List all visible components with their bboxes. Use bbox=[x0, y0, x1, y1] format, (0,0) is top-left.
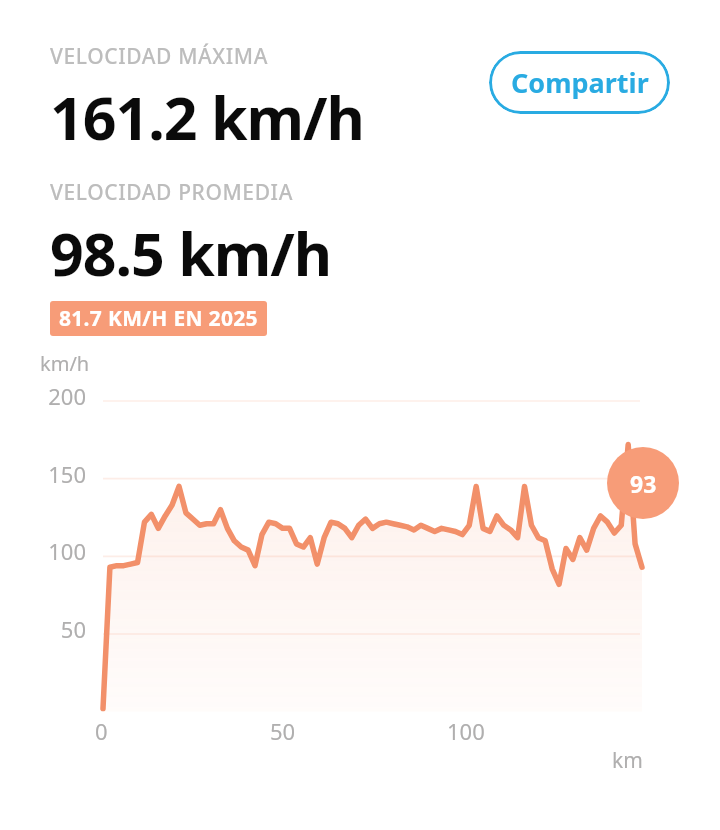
staticText: 98.5 km/h bbox=[50, 213, 332, 293]
button[interactable]: Compartir bbox=[489, 51, 670, 114]
staticText: 150 bbox=[48, 459, 86, 489]
staticText: 50 bbox=[60, 614, 86, 644]
staticText: 0 bbox=[95, 716, 108, 746]
staticText: km bbox=[612, 746, 643, 775]
staticText: 100 bbox=[447, 716, 485, 746]
staticText: VELOCIDAD MÁXIMA bbox=[50, 42, 269, 71]
staticText: km/h bbox=[40, 350, 90, 377]
staticText: Compartir bbox=[511, 64, 649, 101]
staticText: 50 bbox=[270, 716, 296, 746]
staticText: 100 bbox=[48, 536, 86, 566]
staticText: VELOCIDAD PROMEDIA bbox=[50, 178, 293, 207]
button[interactable]: Velocidad final 93 bbox=[607, 447, 679, 519]
staticText: 81.7 KM/H EN 2025 bbox=[59, 304, 258, 333]
staticText: 161.2 km/h bbox=[50, 77, 364, 157]
staticText: 93 bbox=[630, 468, 657, 499]
staticText: 200 bbox=[48, 381, 86, 411]
